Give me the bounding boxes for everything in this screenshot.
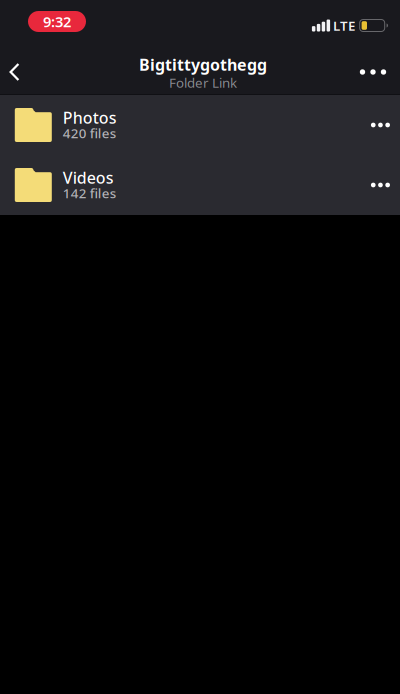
staticText: 142 files xyxy=(63,184,116,202)
staticText: Photos xyxy=(63,107,117,128)
button[interactable]: Back xyxy=(0,46,29,97)
staticText: LTE xyxy=(333,17,355,34)
button[interactable]: More options xyxy=(346,46,400,97)
button[interactable]: Videos xyxy=(0,155,400,215)
staticText: Bigtittygothegg xyxy=(139,54,267,75)
staticText: 420 files xyxy=(63,124,116,142)
staticText: 9:32 xyxy=(43,12,71,31)
button[interactable]: Photos xyxy=(0,95,400,155)
staticText: Videos xyxy=(63,167,114,188)
staticText: Folder Link xyxy=(169,74,237,91)
